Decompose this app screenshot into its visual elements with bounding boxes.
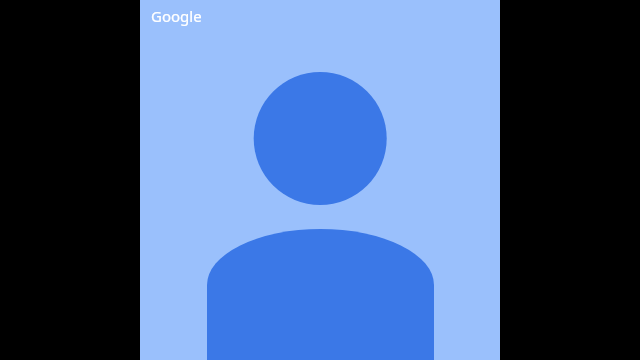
staticText: Google	[151, 6, 202, 26]
button[interactable]: Google account profile picture	[140, 0, 500, 360]
